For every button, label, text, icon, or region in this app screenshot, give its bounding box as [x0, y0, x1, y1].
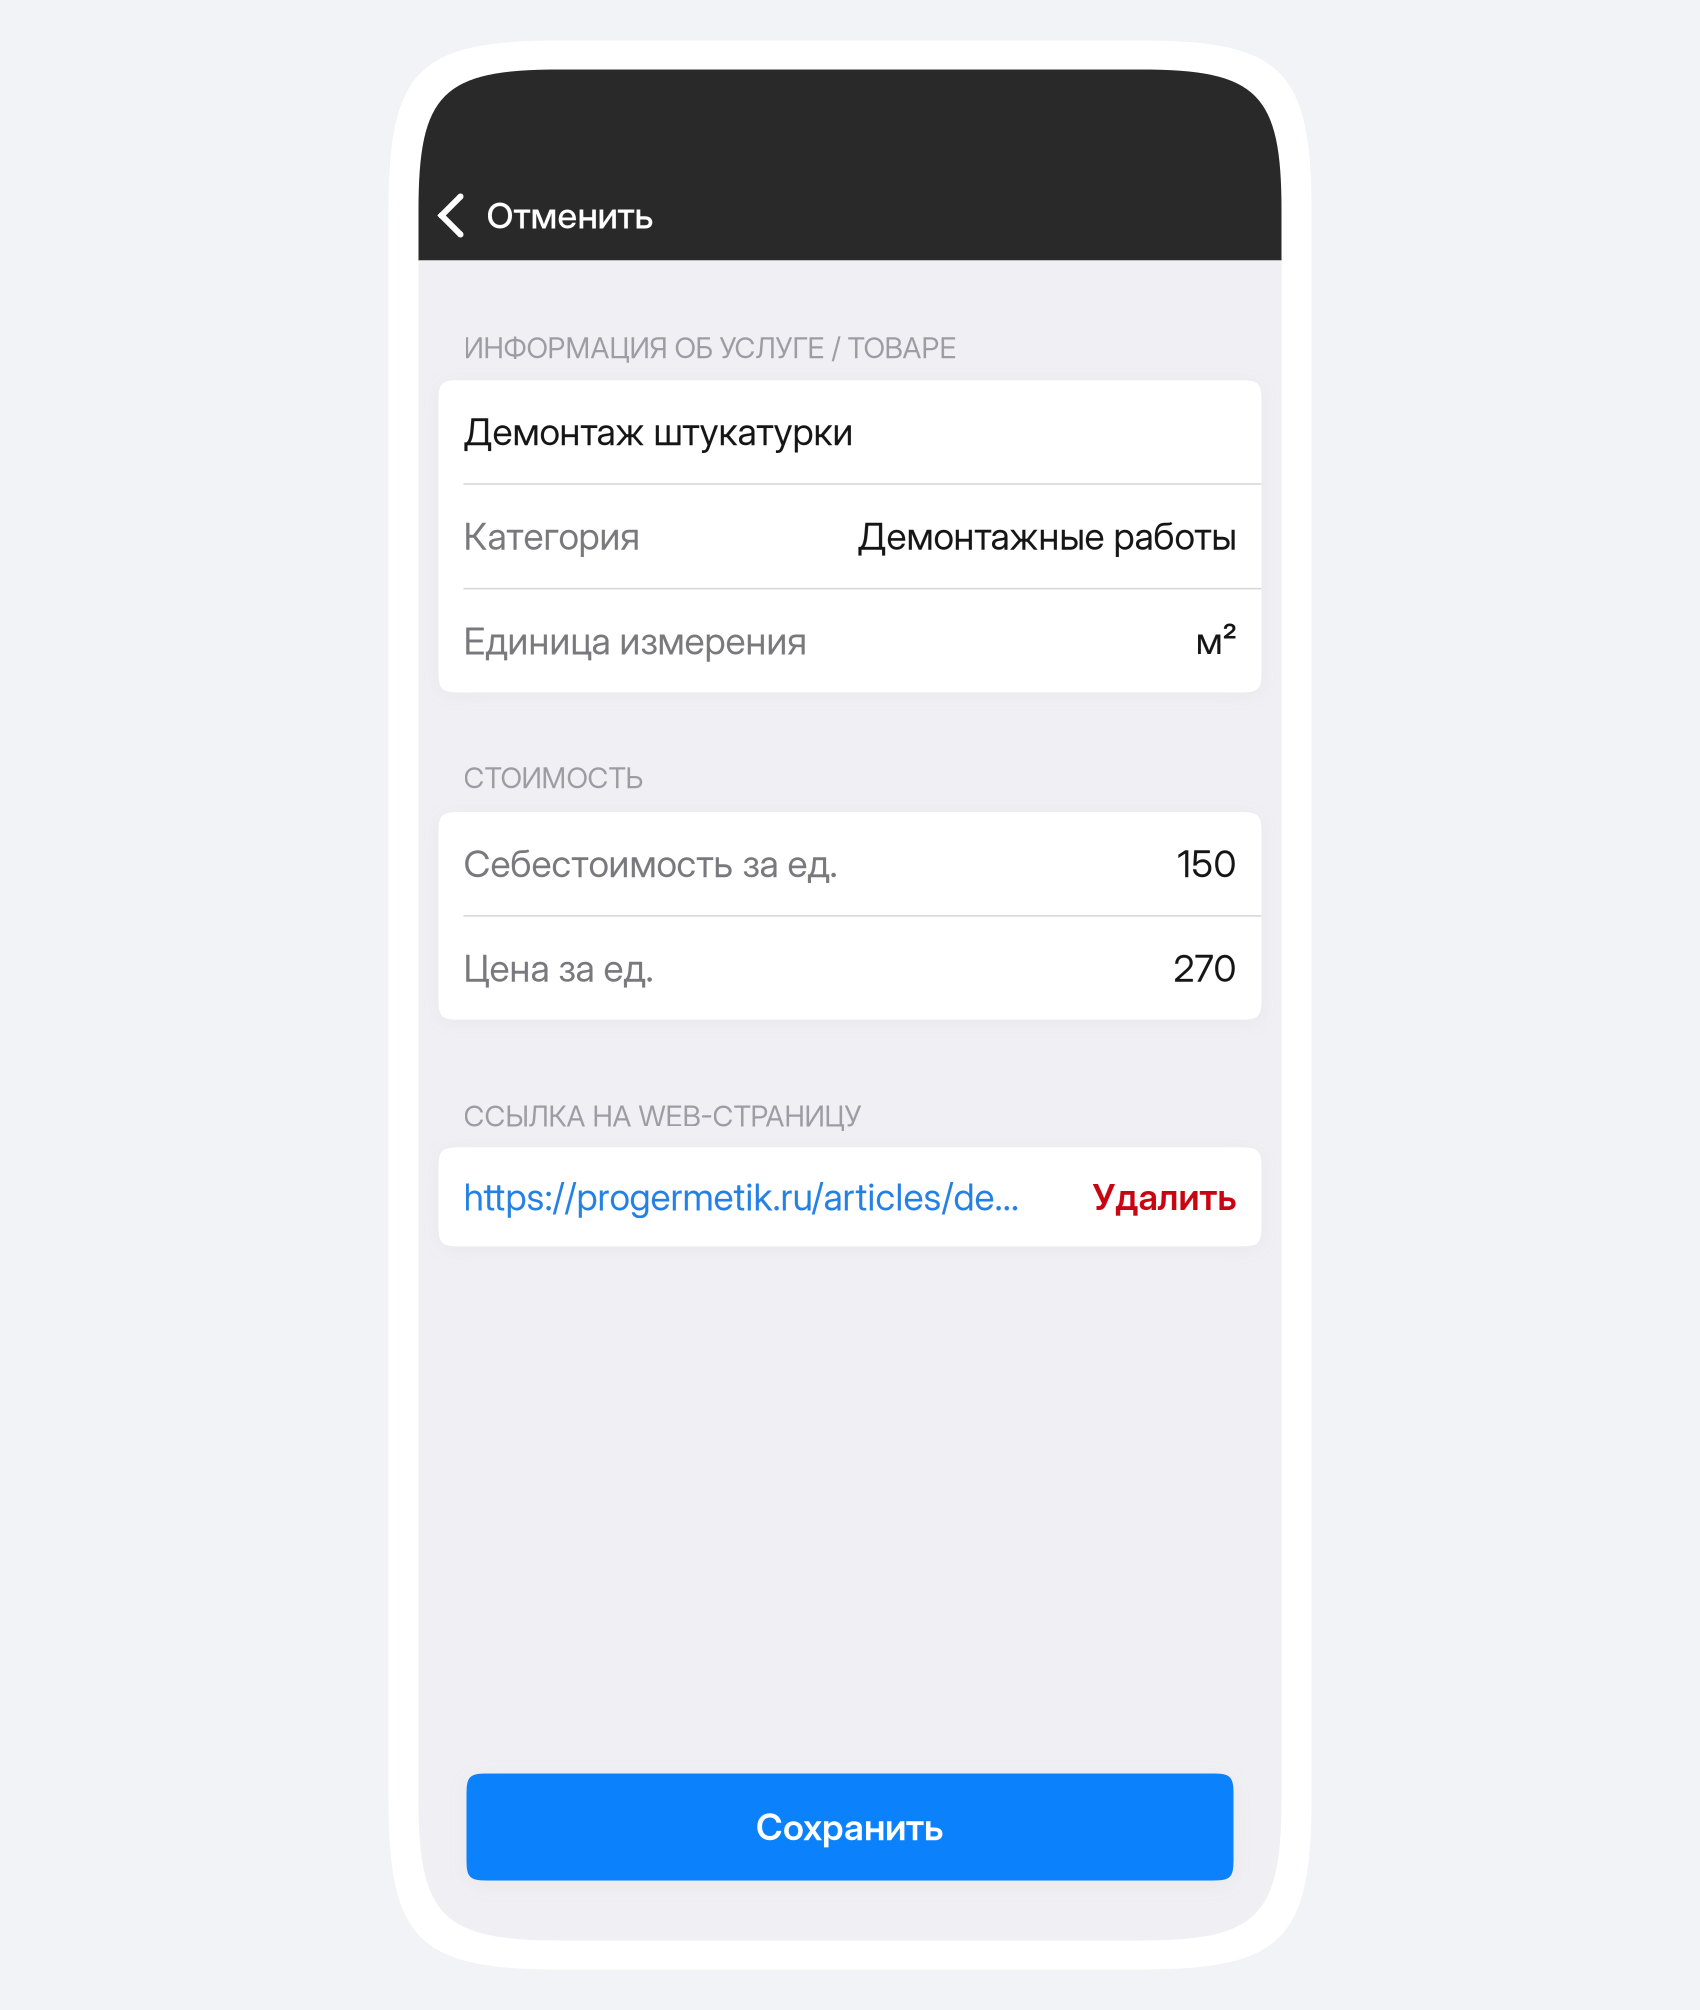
staticText: Демонтаж штукатурки: [463, 409, 853, 454]
staticText: https://progermetik.ru/articles/de…: [463, 1174, 1019, 1219]
staticText: Удалить: [1092, 1175, 1236, 1219]
staticText: Категория: [463, 514, 640, 559]
button[interactable]: Себестоимость за ед.: [438, 812, 1261, 915]
staticText: СТОИМОСТЬ: [463, 760, 643, 795]
staticText: 150: [1177, 841, 1236, 886]
button[interactable]: Демонтаж штукатурки: [438, 380, 1261, 483]
staticText: ССЫЛКА НА WEB-СТРАНИЦУ: [463, 1099, 861, 1133]
button[interactable]: Единица измерения: [438, 589, 1261, 692]
button[interactable]: https://progermetik.ru/articles/de…: [463, 1174, 1019, 1219]
staticText: Демонтажные работы: [857, 514, 1236, 559]
button[interactable]: Отменить: [418, 69, 1281, 260]
staticText: м²: [1195, 618, 1236, 663]
staticText: ИНФОРМАЦИЯ ОБ УСЛУГЕ / ТОВАРЕ: [463, 330, 956, 365]
button[interactable]: Сохранить: [466, 1773, 1233, 1880]
button[interactable]: Цена за ед.: [438, 917, 1261, 1020]
button[interactable]: Категория: [438, 485, 1261, 588]
staticText: Себестоимость за ед.: [463, 841, 837, 886]
staticText: 270: [1173, 946, 1236, 991]
staticText: Цена за ед.: [463, 946, 653, 991]
button[interactable]: Удалить: [1092, 1175, 1236, 1219]
staticText: Сохранить: [756, 1805, 944, 1849]
staticText: Отменить: [486, 194, 653, 237]
staticText: Единица измерения: [463, 618, 807, 663]
